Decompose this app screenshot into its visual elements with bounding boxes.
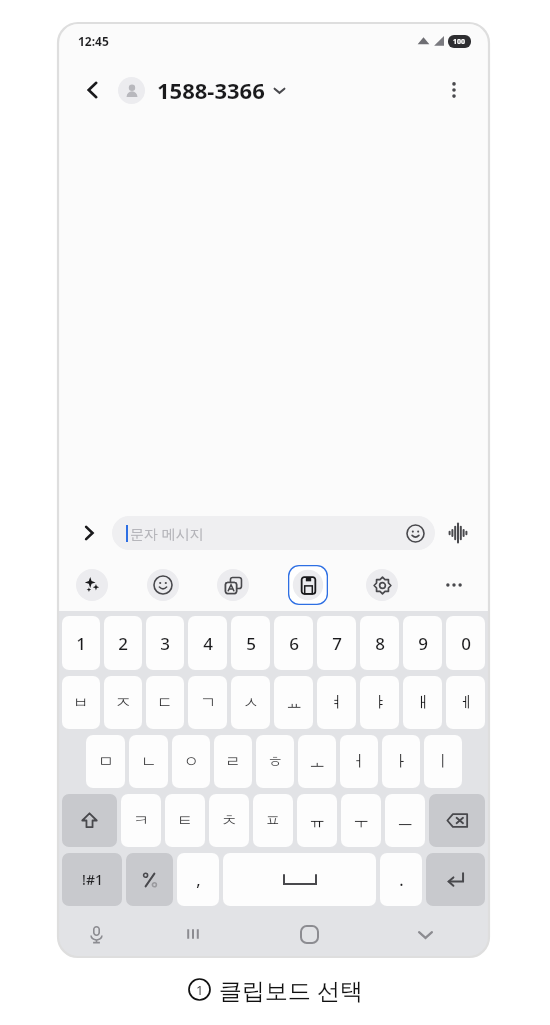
button[interactable]: Backspace [429,794,485,847]
button[interactable]: Enter [426,853,485,906]
staticText: 2 [118,632,128,655]
button[interactable]: ㅋ [121,794,161,847]
button[interactable]: Emoji [403,521,427,545]
staticText: . [399,869,404,891]
button[interactable]: 4 [188,616,227,670]
button[interactable]: Clipboard [288,565,328,605]
button[interactable]: ㅣ [424,735,462,788]
button[interactable]: ㅍ [253,794,293,847]
button[interactable]: . [380,853,422,906]
staticText: ㅗ [309,752,325,772]
staticText: ㅏ [393,752,409,772]
staticText: ㅁ [98,752,114,772]
staticText: 8 [375,632,385,655]
staticText: ㅈ [115,693,131,713]
button[interactable]: 1 [62,616,100,670]
staticText: ㅅ [243,693,259,713]
button[interactable]: Emoji [147,569,179,601]
staticText: ㅊ [221,811,237,831]
button[interactable]: 1588-3366 [157,75,286,105]
staticText: 문자 메시지 [130,524,204,543]
button[interactable]: 3 [146,616,184,670]
staticText: 6 [289,632,299,655]
button[interactable]: 9 [403,616,442,670]
button[interactable]: Hide keyboard [408,917,442,951]
staticText: ㅡ [397,811,413,831]
staticText: 12:45 [78,33,109,49]
staticText: 1 [76,632,86,655]
staticText: ㅌ [177,811,193,831]
button[interactable]: 7 [317,616,356,670]
button[interactable]: ㅗ [298,735,336,788]
button[interactable]: ㅇ [172,735,210,788]
button[interactable]: Recents [176,917,210,951]
staticText: ㅂ [73,693,89,713]
button[interactable]: Voice message [443,518,473,548]
staticText: ㄹ [225,752,241,772]
staticText: 클립보드 선택 [219,974,363,1005]
staticText: ㅜ [353,811,369,831]
button[interactable]: 8 [360,616,399,670]
button[interactable]: 문자 메시지 [112,516,435,550]
staticText: ㄷ [157,693,173,713]
staticText: ㅕ [329,693,345,713]
button[interactable]: ㅊ [209,794,249,847]
button[interactable]: ㅎ [256,735,294,788]
staticText: ㅎ [267,752,283,772]
button[interactable]: !#1 [62,853,122,906]
staticText: 100 [453,37,466,47]
button[interactable]: Shift [62,794,117,847]
button[interactable]: ㅅ [231,676,270,729]
staticText: ㅍ [265,811,281,831]
button[interactable]: ㅡ [385,794,425,847]
staticText: ㄱ [200,693,216,713]
button[interactable]: Symbols [126,853,173,906]
button[interactable]: ㅓ [340,735,378,788]
button[interactable]: Settings [366,569,398,601]
staticText: 1 [196,981,204,999]
button[interactable]: 0 [446,616,485,670]
button[interactable]: 5 [231,616,270,670]
button[interactable]: ㄷ [146,676,184,729]
button[interactable]: , [177,853,219,906]
button[interactable]: ㅕ [317,676,356,729]
staticText: 1588-3366 [157,75,265,105]
staticText: ㅐ [415,693,431,713]
button[interactable]: ㅁ [86,735,125,788]
staticText: 5 [246,632,256,655]
button[interactable]: ㅠ [297,794,337,847]
button[interactable]: Space [223,853,376,906]
staticText: ㅛ [286,693,302,713]
button[interactable]: More options [437,73,471,107]
button[interactable]: ㅏ [382,735,420,788]
staticText: !#1 [82,870,103,889]
button[interactable]: ㅈ [104,676,142,729]
button[interactable]: Translate [217,569,249,601]
staticText: ㅔ [458,693,474,713]
button[interactable]: ㅑ [360,676,399,729]
staticText: 0 [461,632,471,655]
button[interactable]: Back [76,73,110,107]
button[interactable]: 6 [274,616,313,670]
staticText: ㅠ [309,811,325,831]
button[interactable]: 2 [104,616,142,670]
staticText: ㄴ [141,752,157,772]
button[interactable]: ㅔ [446,676,485,729]
button[interactable]: ㄹ [214,735,252,788]
staticText: ㅋ [133,811,149,831]
staticText: ㅑ [372,693,388,713]
button[interactable]: Voice input [80,918,112,950]
button[interactable]: Home [292,917,326,951]
button[interactable]: Sticker [76,569,108,601]
button[interactable]: ㄱ [188,676,227,729]
button[interactable]: ㅌ [165,794,205,847]
staticText: 4 [203,632,213,655]
button[interactable]: More [437,568,471,602]
button[interactable]: ㅐ [403,676,442,729]
button[interactable]: ㅂ [62,676,100,729]
staticText: ㅓ [351,752,367,772]
button[interactable]: ㄴ [129,735,168,788]
button[interactable]: ㅛ [274,676,313,729]
button[interactable]: ㅜ [341,794,381,847]
button[interactable]: Expand [74,518,104,548]
